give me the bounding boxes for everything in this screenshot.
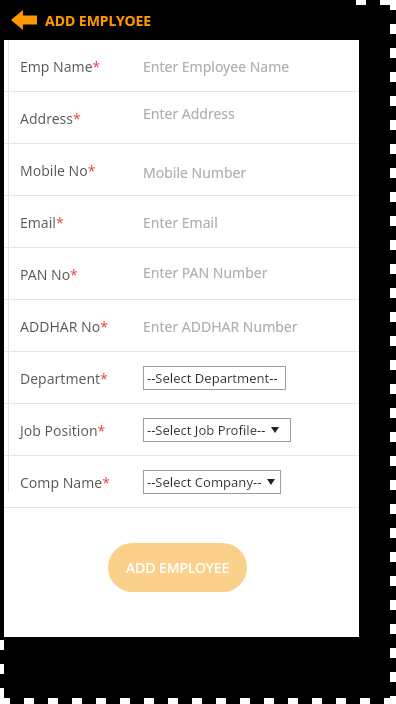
staticText: Address* <box>20 109 81 128</box>
button[interactable]: Address* <box>4 92 359 144</box>
button[interactable]: Emp Name* <box>4 40 359 92</box>
staticText: Emp Name* <box>20 57 101 76</box>
button[interactable]: PAN No* <box>4 248 359 300</box>
button[interactable]: Mobile No* <box>4 144 359 196</box>
staticText: Email* <box>20 213 64 232</box>
staticText: Enter PAN Number <box>143 263 268 282</box>
staticText: ADDHAR No* <box>20 317 108 336</box>
staticText: Enter ADDHAR Number <box>143 317 298 336</box>
staticText: Enter Email <box>143 213 218 232</box>
button[interactable]: ADDHAR No* <box>4 300 359 352</box>
staticText: ADD EMPLOYEE <box>126 558 230 577</box>
staticText: PAN No* <box>20 265 78 284</box>
staticText: Job Position* <box>20 421 106 440</box>
staticText: Comp Name* <box>20 473 110 492</box>
button[interactable]: Department* <box>4 352 359 404</box>
staticText: Department* <box>20 369 108 388</box>
button[interactable]: ADD EMPLOYEE <box>108 543 247 592</box>
button[interactable]: Comp Name* <box>4 456 359 508</box>
button[interactable]: Job Position* <box>4 404 359 456</box>
button[interactable]: Email* <box>4 196 359 248</box>
staticText: --Select Company-- <box>147 473 262 491</box>
staticText: ADD EMPLYOEE <box>45 11 152 30</box>
staticText: Enter Address <box>143 104 235 123</box>
staticText: --Select Department-- <box>147 369 278 387</box>
staticText: Mobile Number <box>143 163 247 182</box>
button[interactable]: Back <box>8 6 40 34</box>
staticText: Enter Employee Name <box>143 57 290 76</box>
staticText: --Select Job Profile-- <box>147 421 266 439</box>
staticText: Mobile No* <box>20 161 96 180</box>
